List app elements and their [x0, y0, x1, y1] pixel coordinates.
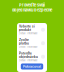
staticText: objednávku bezpečně: [12, 8, 52, 12]
staticText: Detail informace: [19, 32, 37, 35]
staticText: Potvrďte objednávku: [19, 52, 38, 59]
staticText: Detail informace: [19, 45, 37, 48]
staticText: Zvolte platbu: [19, 38, 29, 45]
button[interactable]: Pokračovat: [21, 63, 43, 70]
staticText: Proveďte svoji: [19, 2, 45, 7]
staticText: Pokračovat: [23, 65, 41, 68]
staticText: Detail informace: [19, 59, 37, 62]
staticText: Vyberte si produkt: [19, 25, 35, 32]
